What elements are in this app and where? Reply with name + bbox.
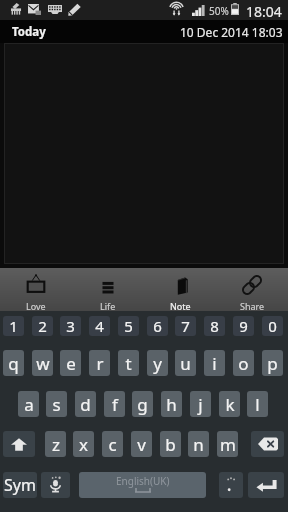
button[interactable]: 5	[118, 316, 139, 336]
button[interactable]: 9	[233, 316, 254, 336]
button[interactable]: 2	[32, 316, 53, 336]
staticText: z	[52, 433, 60, 456]
staticText: j	[198, 393, 203, 416]
button[interactable]: a	[18, 391, 39, 417]
staticText: 0	[268, 316, 277, 336]
staticText: i	[212, 352, 217, 375]
button[interactable]: 6	[147, 316, 168, 336]
staticText: f	[112, 393, 118, 416]
staticText: u	[180, 352, 191, 375]
staticText: 6	[153, 316, 162, 336]
button[interactable]: y	[147, 350, 168, 376]
staticText: 18:04	[246, 2, 282, 21]
staticText: Share	[240, 300, 265, 312]
staticText: 1	[9, 316, 18, 336]
button[interactable]: s	[46, 391, 67, 417]
button[interactable]: u	[175, 350, 196, 376]
button[interactable]: d	[75, 391, 96, 417]
button[interactable]: v	[131, 431, 152, 457]
staticText: 3	[66, 316, 75, 336]
button[interactable]: x	[73, 431, 94, 457]
button[interactable]: m	[217, 431, 238, 457]
button[interactable]: 1	[3, 316, 24, 336]
staticText: a	[24, 393, 34, 416]
button[interactable]: w	[32, 350, 53, 376]
button[interactable]: Note	[144, 268, 216, 311]
button[interactable]: Voice input	[41, 472, 70, 498]
staticText: l	[255, 393, 260, 416]
staticText: n	[193, 433, 204, 456]
staticText: b	[165, 433, 176, 456]
button[interactable]: 0	[262, 316, 283, 336]
button[interactable]: 4	[89, 316, 110, 336]
staticText: 5	[124, 316, 133, 336]
button[interactable]: 8	[204, 316, 225, 336]
staticText: 2	[38, 316, 47, 336]
button[interactable]: p	[262, 350, 283, 376]
button[interactable]: Life	[72, 268, 144, 311]
button[interactable]: i	[204, 350, 225, 376]
button[interactable]: n	[188, 431, 209, 457]
staticText: k	[225, 393, 235, 416]
button[interactable]: h	[161, 391, 182, 417]
staticText: t	[125, 352, 132, 375]
staticText: o	[238, 352, 249, 375]
staticText: y	[153, 352, 162, 375]
staticText: English(UK)	[116, 474, 170, 488]
button[interactable]: l	[247, 391, 268, 417]
button[interactable]: c	[102, 431, 123, 457]
staticText: r	[96, 352, 104, 375]
staticText: h	[166, 393, 177, 416]
button[interactable]: Sym	[3, 472, 37, 498]
button[interactable]: Period	[219, 472, 243, 498]
staticText: 10 Dec 2014 18:03	[180, 24, 283, 40]
button[interactable]: 3	[60, 316, 81, 336]
staticText: s	[52, 393, 61, 416]
staticText: Life	[100, 300, 116, 312]
button[interactable]: e	[60, 350, 81, 376]
staticText: c	[108, 433, 117, 456]
staticText: p	[267, 352, 278, 375]
staticText: w	[36, 352, 50, 375]
staticText: 50%	[209, 4, 229, 18]
button[interactable]: z	[45, 431, 66, 457]
staticText: 4	[95, 316, 104, 336]
button[interactable]: o	[233, 350, 254, 376]
staticText: g	[137, 393, 148, 416]
button[interactable]: Love	[0, 268, 72, 311]
staticText: Sym	[4, 474, 36, 496]
button[interactable]: 7	[175, 316, 196, 336]
staticText: 8	[210, 316, 219, 336]
button[interactable]: g	[132, 391, 153, 417]
button[interactable]: Backspace	[251, 431, 284, 457]
staticText: Note	[170, 300, 191, 312]
button[interactable]: English(UK)	[79, 472, 206, 498]
button[interactable]: Enter	[248, 472, 284, 498]
staticText: Love	[26, 300, 46, 312]
staticText: m	[220, 433, 236, 456]
staticText: d	[80, 393, 91, 416]
button[interactable]: r	[89, 350, 110, 376]
button[interactable]: q	[3, 350, 24, 376]
button[interactable]: k	[219, 391, 240, 417]
staticText: Today	[12, 24, 46, 40]
staticText: 9	[239, 316, 248, 336]
staticText: 7	[181, 316, 190, 336]
staticText: q	[8, 352, 19, 375]
staticText: v	[137, 433, 146, 456]
button[interactable]: b	[160, 431, 181, 457]
staticText: x	[79, 433, 88, 456]
button[interactable]: j	[190, 391, 211, 417]
staticText: e	[66, 352, 76, 375]
button[interactable]: Shift	[3, 431, 35, 457]
button[interactable]: f	[104, 391, 125, 417]
button[interactable]: t	[118, 350, 139, 376]
button[interactable]: Share	[216, 268, 288, 311]
